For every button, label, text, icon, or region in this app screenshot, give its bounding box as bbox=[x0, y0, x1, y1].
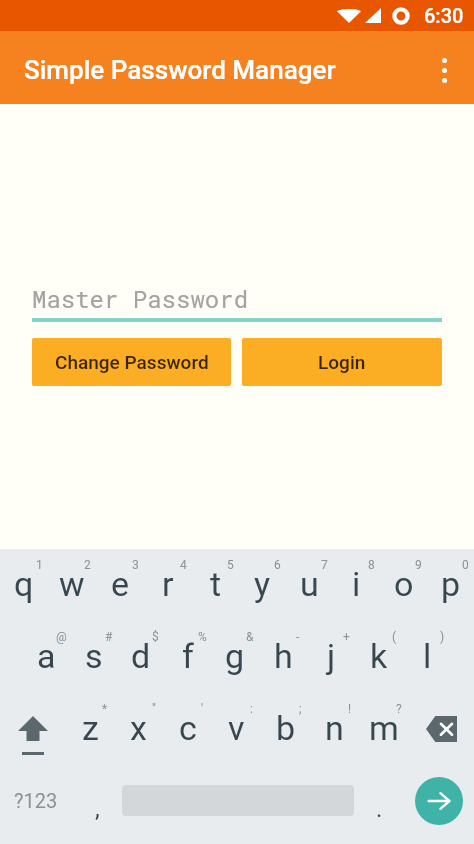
staticText: r bbox=[162, 564, 174, 604]
staticText: t bbox=[210, 564, 222, 604]
staticText: z bbox=[82, 708, 99, 748]
staticText: e bbox=[111, 564, 130, 604]
button[interactable]: a bbox=[23, 621, 70, 693]
staticText: h bbox=[274, 636, 293, 676]
staticText: 6:30 bbox=[424, 4, 464, 27]
staticText: d bbox=[131, 636, 151, 676]
staticText: g bbox=[225, 636, 245, 676]
staticText: u bbox=[300, 564, 319, 604]
staticText: 7 bbox=[321, 558, 328, 572]
staticText: " bbox=[152, 702, 156, 716]
staticText: 9 bbox=[415, 558, 422, 572]
button[interactable]: ?123 bbox=[0, 765, 72, 844]
button[interactable]: d bbox=[117, 621, 164, 693]
staticText: Change Password bbox=[55, 351, 209, 373]
staticText: @ bbox=[56, 630, 67, 644]
staticText: 5 bbox=[227, 558, 234, 572]
staticText: x bbox=[130, 708, 147, 748]
staticText: * bbox=[102, 702, 108, 716]
staticText: & bbox=[246, 630, 254, 644]
staticText: ' bbox=[201, 702, 204, 716]
staticText: $ bbox=[152, 630, 159, 644]
button[interactable]: q bbox=[0, 549, 48, 621]
button[interactable]: . bbox=[354, 765, 404, 844]
button[interactable]: Enter bbox=[404, 765, 474, 844]
staticText: + bbox=[343, 630, 350, 644]
staticText: ( bbox=[392, 630, 397, 644]
staticText: l bbox=[423, 636, 432, 676]
button[interactable]: c bbox=[163, 693, 212, 765]
staticText: o bbox=[394, 564, 414, 604]
button[interactable]: j bbox=[307, 621, 355, 693]
staticText: : bbox=[250, 702, 253, 716]
staticText: 2 bbox=[84, 558, 91, 572]
staticText: v bbox=[228, 708, 245, 748]
staticText: Master Password bbox=[32, 283, 249, 315]
button[interactable]: y bbox=[239, 549, 286, 621]
button[interactable]: h bbox=[259, 621, 307, 693]
button[interactable]: Login bbox=[242, 338, 442, 386]
staticText: 8 bbox=[368, 558, 375, 572]
button[interactable]: x bbox=[114, 693, 163, 765]
staticText: s bbox=[85, 636, 103, 676]
button[interactable]: Backspace bbox=[408, 693, 474, 765]
button[interactable]: Space bbox=[122, 765, 354, 844]
button[interactable]: o bbox=[380, 549, 427, 621]
button[interactable]: z bbox=[66, 693, 114, 765]
button[interactable]: p bbox=[427, 549, 474, 621]
staticText: 4 bbox=[180, 558, 187, 572]
staticText: Simple Password Manager bbox=[24, 55, 336, 85]
button[interactable]: t bbox=[192, 549, 239, 621]
button[interactable]: More options bbox=[422, 46, 466, 90]
staticText: 3 bbox=[132, 558, 139, 572]
staticText: y bbox=[254, 564, 271, 604]
staticText: ?123 bbox=[14, 789, 58, 812]
button[interactable]: , bbox=[72, 765, 122, 844]
staticText: k bbox=[370, 636, 388, 676]
button[interactable]: b bbox=[261, 693, 310, 765]
staticText: i bbox=[352, 564, 361, 604]
button[interactable]: n bbox=[310, 693, 359, 765]
staticText: , bbox=[95, 795, 100, 823]
button[interactable]: r bbox=[144, 549, 192, 621]
button[interactable]: k bbox=[355, 621, 403, 693]
staticText: 0 bbox=[462, 558, 469, 572]
staticText: ! bbox=[348, 702, 352, 716]
button[interactable]: Change Password bbox=[32, 338, 231, 386]
staticText: a bbox=[37, 636, 56, 676]
button[interactable]: w bbox=[48, 549, 96, 621]
staticText: # bbox=[105, 630, 113, 644]
button[interactable]: e bbox=[96, 549, 144, 621]
staticText: Login bbox=[318, 351, 366, 373]
staticText: % bbox=[198, 630, 207, 644]
staticText: q bbox=[14, 564, 34, 604]
staticText: m bbox=[369, 708, 399, 748]
staticText: 1 bbox=[36, 558, 43, 572]
staticText: b bbox=[276, 708, 296, 748]
button[interactable]: m bbox=[359, 693, 408, 765]
staticText: p bbox=[441, 564, 461, 604]
staticText: . bbox=[376, 795, 383, 823]
button[interactable]: f bbox=[164, 621, 211, 693]
button[interactable]: i bbox=[333, 549, 380, 621]
staticText: n bbox=[325, 708, 344, 748]
staticText: - bbox=[296, 630, 300, 644]
button[interactable]: s bbox=[70, 621, 117, 693]
staticText: 6 bbox=[274, 558, 281, 572]
button[interactable]: u bbox=[286, 549, 333, 621]
button[interactable]: Shift bbox=[0, 693, 66, 765]
staticText: j bbox=[327, 636, 336, 676]
staticText: ? bbox=[396, 702, 402, 716]
staticText: f bbox=[182, 636, 194, 676]
staticText: c bbox=[179, 708, 197, 748]
button[interactable]: v bbox=[212, 693, 261, 765]
staticText: ; bbox=[299, 702, 302, 716]
staticText: ) bbox=[440, 630, 445, 644]
button[interactable]: l bbox=[403, 621, 451, 693]
staticText: w bbox=[59, 564, 85, 604]
button[interactable]: g bbox=[211, 621, 259, 693]
